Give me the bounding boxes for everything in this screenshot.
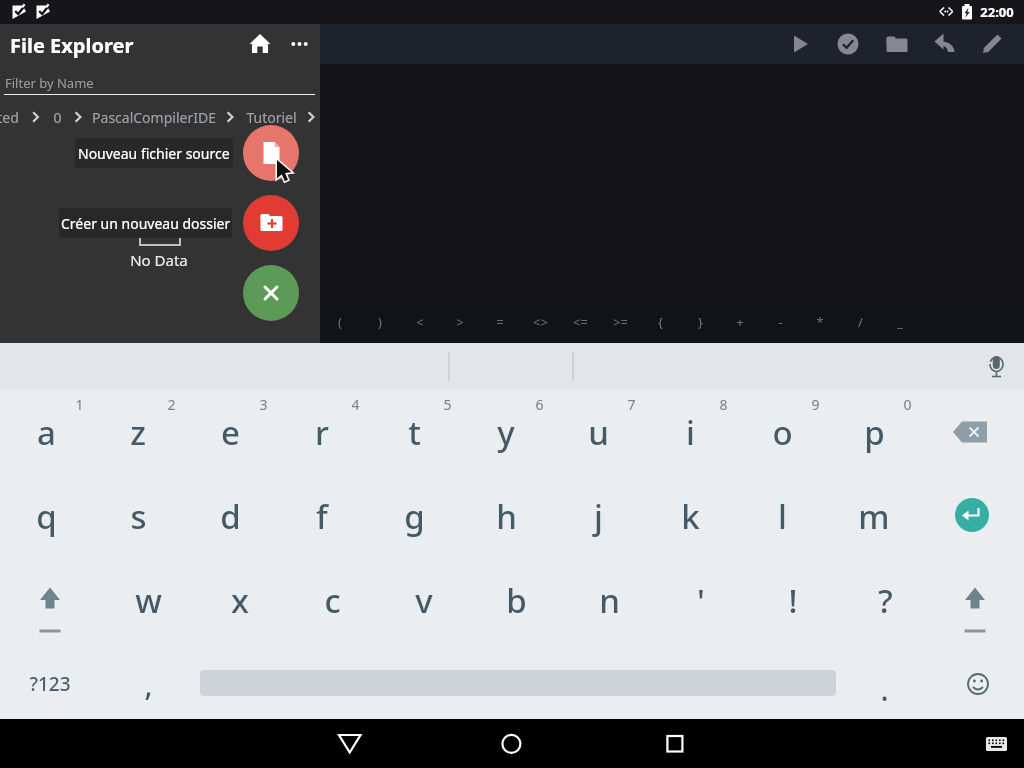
button[interactable]: ' (656, 560, 746, 640)
button[interactable]: d (185, 476, 275, 556)
button[interactable]: - (761, 302, 799, 342)
button[interactable] (243, 265, 299, 321)
staticText: t (408, 410, 421, 455)
staticText: Créer un nouveau dossier (61, 214, 231, 233)
button[interactable]: = (481, 302, 519, 342)
button[interactable]: <= (561, 302, 599, 342)
button[interactable]: s (93, 476, 183, 556)
button[interactable]: t (369, 392, 459, 472)
button[interactable] (929, 560, 1021, 640)
staticText: File Explorer (10, 32, 134, 59)
staticText: 2 (167, 395, 176, 414)
staticText: 8 (719, 395, 728, 414)
staticText: <= (573, 313, 588, 331)
staticText: ?123 (29, 671, 71, 697)
staticText: v (415, 578, 433, 623)
button[interactable]: ( (321, 302, 359, 342)
staticText: h (496, 494, 517, 539)
staticText: 0 (903, 395, 912, 414)
button[interactable] (243, 195, 299, 251)
staticText: q (36, 494, 57, 539)
button[interactable]: b (471, 560, 561, 640)
button[interactable]: u (553, 392, 643, 472)
button[interactable]: ? (840, 560, 930, 640)
staticText: d (220, 494, 241, 539)
staticText: PascalCompilerIDE (92, 108, 216, 127)
button[interactable]: . (844, 649, 924, 729)
button[interactable]: c (287, 560, 377, 640)
button[interactable]: q (1, 476, 91, 556)
staticText: c (324, 578, 341, 623)
staticText: 0 (53, 108, 62, 127)
button[interactable] (246, 30, 274, 58)
staticText: Nouveau fichier source (78, 144, 230, 163)
staticText: 4 (351, 395, 360, 414)
button[interactable]: <> (521, 302, 559, 342)
staticText: j (594, 494, 603, 539)
staticText: l (778, 494, 787, 539)
button[interactable] (286, 30, 314, 58)
button[interactable]: ! (748, 560, 838, 640)
button[interactable]: m (829, 476, 919, 556)
button[interactable]: _ (881, 302, 919, 342)
button[interactable]: ?123 (4, 644, 96, 724)
button[interactable]: o (737, 392, 827, 472)
button[interactable] (926, 392, 1018, 472)
staticText: n (599, 578, 620, 623)
button[interactable] (786, 30, 814, 58)
button[interactable]: } (681, 302, 719, 342)
staticText: { (658, 313, 663, 331)
button[interactable]: h (461, 476, 551, 556)
button[interactable] (472, 722, 552, 766)
button[interactable]: r (277, 392, 367, 472)
button[interactable]: * (801, 302, 839, 342)
button[interactable]: j (553, 476, 643, 556)
staticText: s (130, 494, 147, 539)
button[interactable]: > (441, 302, 479, 342)
staticText: ! (788, 578, 798, 623)
staticText: 6 (535, 395, 544, 414)
button[interactable] (310, 722, 390, 766)
staticText: . (880, 669, 889, 710)
button[interactable]: l (737, 476, 827, 556)
button[interactable]: a (1, 392, 91, 472)
button[interactable]: ) (361, 302, 399, 342)
button[interactable] (834, 30, 862, 58)
staticText: e (221, 410, 240, 455)
staticText: r (315, 410, 329, 455)
button[interactable]: < (401, 302, 439, 342)
button[interactable]: v (379, 560, 469, 640)
button[interactable] (882, 30, 910, 58)
button[interactable]: i (645, 392, 735, 472)
staticText: ' (697, 578, 705, 623)
button[interactable] (926, 476, 1018, 556)
button[interactable]: p (829, 392, 919, 472)
staticText: ) (378, 313, 382, 331)
button[interactable]: x (195, 560, 285, 640)
button[interactable]: w (103, 560, 193, 640)
button[interactable]: { (641, 302, 679, 342)
button[interactable]: z (93, 392, 183, 472)
button[interactable] (4, 560, 96, 640)
button[interactable] (978, 30, 1006, 58)
button[interactable]: e (185, 392, 275, 472)
button[interactable]: y (461, 392, 551, 472)
button[interactable] (243, 125, 299, 181)
button[interactable]: / (841, 302, 879, 342)
staticText: Filter by Name (5, 74, 94, 92)
button[interactable]: f (277, 476, 367, 556)
staticText: ? (878, 578, 893, 623)
button[interactable]: g (369, 476, 459, 556)
button[interactable]: k (645, 476, 735, 556)
button[interactable]: , (108, 644, 188, 724)
button[interactable] (930, 30, 958, 58)
button[interactable] (932, 644, 1024, 724)
button[interactable] (634, 722, 714, 766)
button[interactable]: + (721, 302, 759, 342)
button[interactable]: n (564, 560, 654, 640)
button[interactable]: >= (601, 302, 639, 342)
staticText: 9 (811, 395, 820, 414)
staticText: 5 (443, 395, 452, 414)
button[interactable] (980, 726, 1016, 762)
